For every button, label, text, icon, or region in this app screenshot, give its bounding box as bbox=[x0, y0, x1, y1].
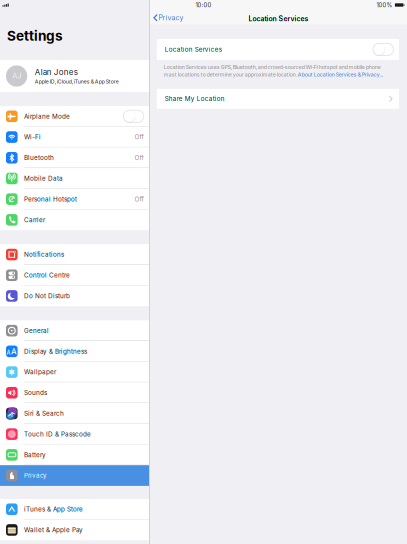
staticText: Off bbox=[134, 133, 143, 141]
button[interactable]: iTunes & App Store bbox=[0, 499, 149, 520]
staticText: Location Services bbox=[248, 15, 308, 23]
button[interactable]: A bbox=[0, 341, 149, 362]
staticText: Privacy bbox=[24, 472, 47, 479]
button[interactable]: Notifications bbox=[0, 244, 149, 265]
staticText: Notifications bbox=[24, 251, 64, 258]
staticText: Share My Location bbox=[165, 95, 225, 103]
staticText: Do Not Disturb bbox=[24, 292, 70, 300]
staticText: Settings bbox=[7, 27, 63, 44]
button[interactable]: Control Centre bbox=[0, 265, 149, 286]
staticText: iTunes & App Store bbox=[24, 505, 83, 513]
staticText: Control Centre bbox=[24, 271, 70, 279]
staticText: 10:00 bbox=[195, 1, 211, 9]
staticText: Privacy bbox=[158, 14, 183, 22]
button[interactable]: Personal Hotspot bbox=[0, 189, 149, 209]
staticText: About Location Services & Privacy... bbox=[298, 71, 383, 78]
staticText: Carrier bbox=[24, 216, 45, 224]
button[interactable]: Wallpaper bbox=[0, 362, 149, 382]
staticText: General bbox=[24, 327, 49, 334]
staticText: Mobile Data bbox=[24, 175, 63, 182]
staticText: Wallpaper bbox=[24, 368, 56, 376]
staticText: Off bbox=[134, 154, 143, 162]
button[interactable]: Wallet & Apple Pay bbox=[0, 520, 149, 540]
button[interactable]: Touch ID & Passcode bbox=[0, 424, 149, 444]
staticText: Off bbox=[134, 195, 143, 203]
button[interactable]: Battery bbox=[0, 444, 149, 465]
staticText: Bluetooth bbox=[24, 154, 54, 162]
button[interactable]: Wi-Fi bbox=[0, 127, 149, 147]
button[interactable]: Mobile Data bbox=[0, 168, 149, 189]
button[interactable]: Share My Location bbox=[157, 89, 399, 109]
staticText: Wallet & Apple Pay bbox=[24, 526, 83, 534]
button[interactable]: Sounds bbox=[0, 382, 149, 403]
staticText: Wi-Fi bbox=[24, 133, 41, 141]
staticText: Personal Hotspot bbox=[24, 195, 77, 203]
button[interactable]: Bluetooth bbox=[0, 147, 149, 168]
button[interactable]: Airplane Mode bbox=[0, 106, 149, 127]
staticText: Touch ID & Passcode bbox=[24, 430, 91, 438]
staticText: AJ bbox=[12, 72, 21, 80]
button[interactable]: AJ bbox=[0, 60, 149, 92]
staticText: Location Services uses GPS, Bluetooth, a… bbox=[164, 64, 381, 70]
staticText: Battery bbox=[24, 451, 46, 459]
button[interactable]: About Location Services & Privacy... bbox=[298, 71, 383, 78]
staticText: Display & Brightness bbox=[24, 347, 87, 355]
staticText: 100% bbox=[376, 1, 392, 9]
staticText: Siri & Search bbox=[24, 410, 64, 417]
staticText: Location Services bbox=[165, 46, 222, 53]
staticText: mast locations to determine your approxi… bbox=[164, 71, 298, 78]
button[interactable]: Privacy bbox=[0, 465, 149, 486]
button[interactable]: Do Not Disturb bbox=[0, 286, 149, 306]
staticText: Sounds bbox=[24, 389, 47, 397]
staticText: A bbox=[11, 346, 17, 356]
button[interactable]: Carrier bbox=[0, 209, 149, 230]
staticText: Apple ID, iCloud, iTunes & App Store bbox=[35, 78, 119, 85]
staticText: Alan Jones bbox=[35, 67, 78, 77]
button[interactable]: General bbox=[0, 320, 149, 341]
staticText: A bbox=[6, 349, 10, 356]
staticText: Airplane Mode bbox=[24, 112, 70, 120]
button[interactable]: Privacy bbox=[150, 12, 186, 24]
button[interactable]: Siri & Search bbox=[0, 403, 149, 424]
button[interactable]: Location Services bbox=[373, 43, 393, 56]
